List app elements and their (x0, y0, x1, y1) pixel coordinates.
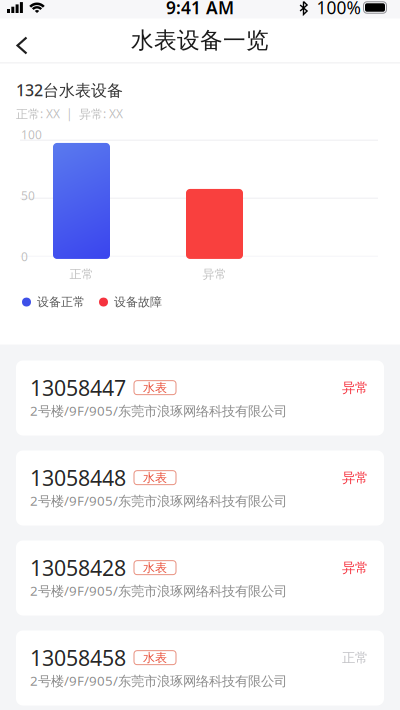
staticText: 异常 (342, 469, 368, 486)
staticText: 正常 (342, 649, 368, 666)
staticText: 100% (316, 0, 360, 19)
button[interactable]: Back (0, 19, 42, 62)
staticText: 设备故障 (114, 295, 162, 309)
staticText: 50 (21, 188, 35, 203)
staticText: 异常 (342, 559, 368, 576)
staticText: 100 (21, 127, 42, 143)
staticText: 2号楼/9F/905/东莞市浪琢网络科技有限公司 (30, 492, 287, 509)
staticText: 13058448 (30, 463, 126, 492)
staticText: 异常 (202, 267, 226, 282)
button[interactable]: 13058447 (16, 360, 384, 435)
staticText: 水表 (143, 470, 167, 485)
button[interactable]: 13058448 (16, 450, 384, 525)
staticText: 13058458 (30, 643, 126, 672)
button[interactable]: 13058458 (16, 630, 384, 705)
staticText: 13058447 (30, 373, 126, 402)
staticText: 正常: XX | 异常: XX (16, 106, 123, 122)
staticText: 水表 (143, 560, 167, 575)
staticText: 水表设备一览 (131, 27, 269, 54)
staticText: 水表 (143, 650, 167, 665)
staticText: 设备正常 (37, 295, 85, 309)
staticText: 异常 (342, 379, 368, 396)
staticText: 2号楼/9F/905/东莞市浪琢网络科技有限公司 (30, 582, 287, 599)
staticText: 0 (21, 249, 28, 264)
staticText: 2号楼/9F/905/东莞市浪琢网络科技有限公司 (30, 402, 287, 419)
staticText: 正常 (69, 267, 93, 282)
staticText: 132台水表设备 (16, 79, 123, 101)
button[interactable]: 13058428 (16, 540, 384, 615)
staticText: 9:41 AM (166, 0, 234, 19)
staticText: 2号楼/9F/905/东莞市浪琢网络科技有限公司 (30, 672, 287, 689)
staticText: 13058428 (30, 553, 126, 582)
staticText: 水表 (143, 380, 167, 395)
